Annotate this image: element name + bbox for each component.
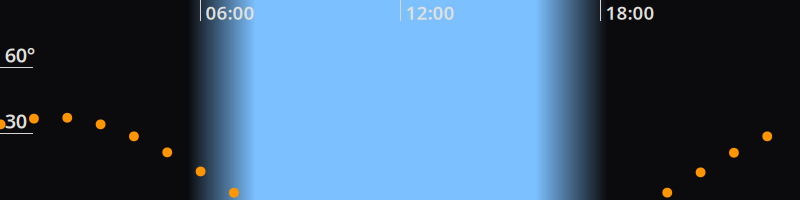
staticText: 30	[5, 107, 27, 134]
staticText: 12:00	[405, 0, 454, 25]
staticText: 18:00	[605, 0, 654, 25]
staticText: 06:00	[205, 0, 254, 25]
staticText: 60°	[5, 41, 36, 68]
